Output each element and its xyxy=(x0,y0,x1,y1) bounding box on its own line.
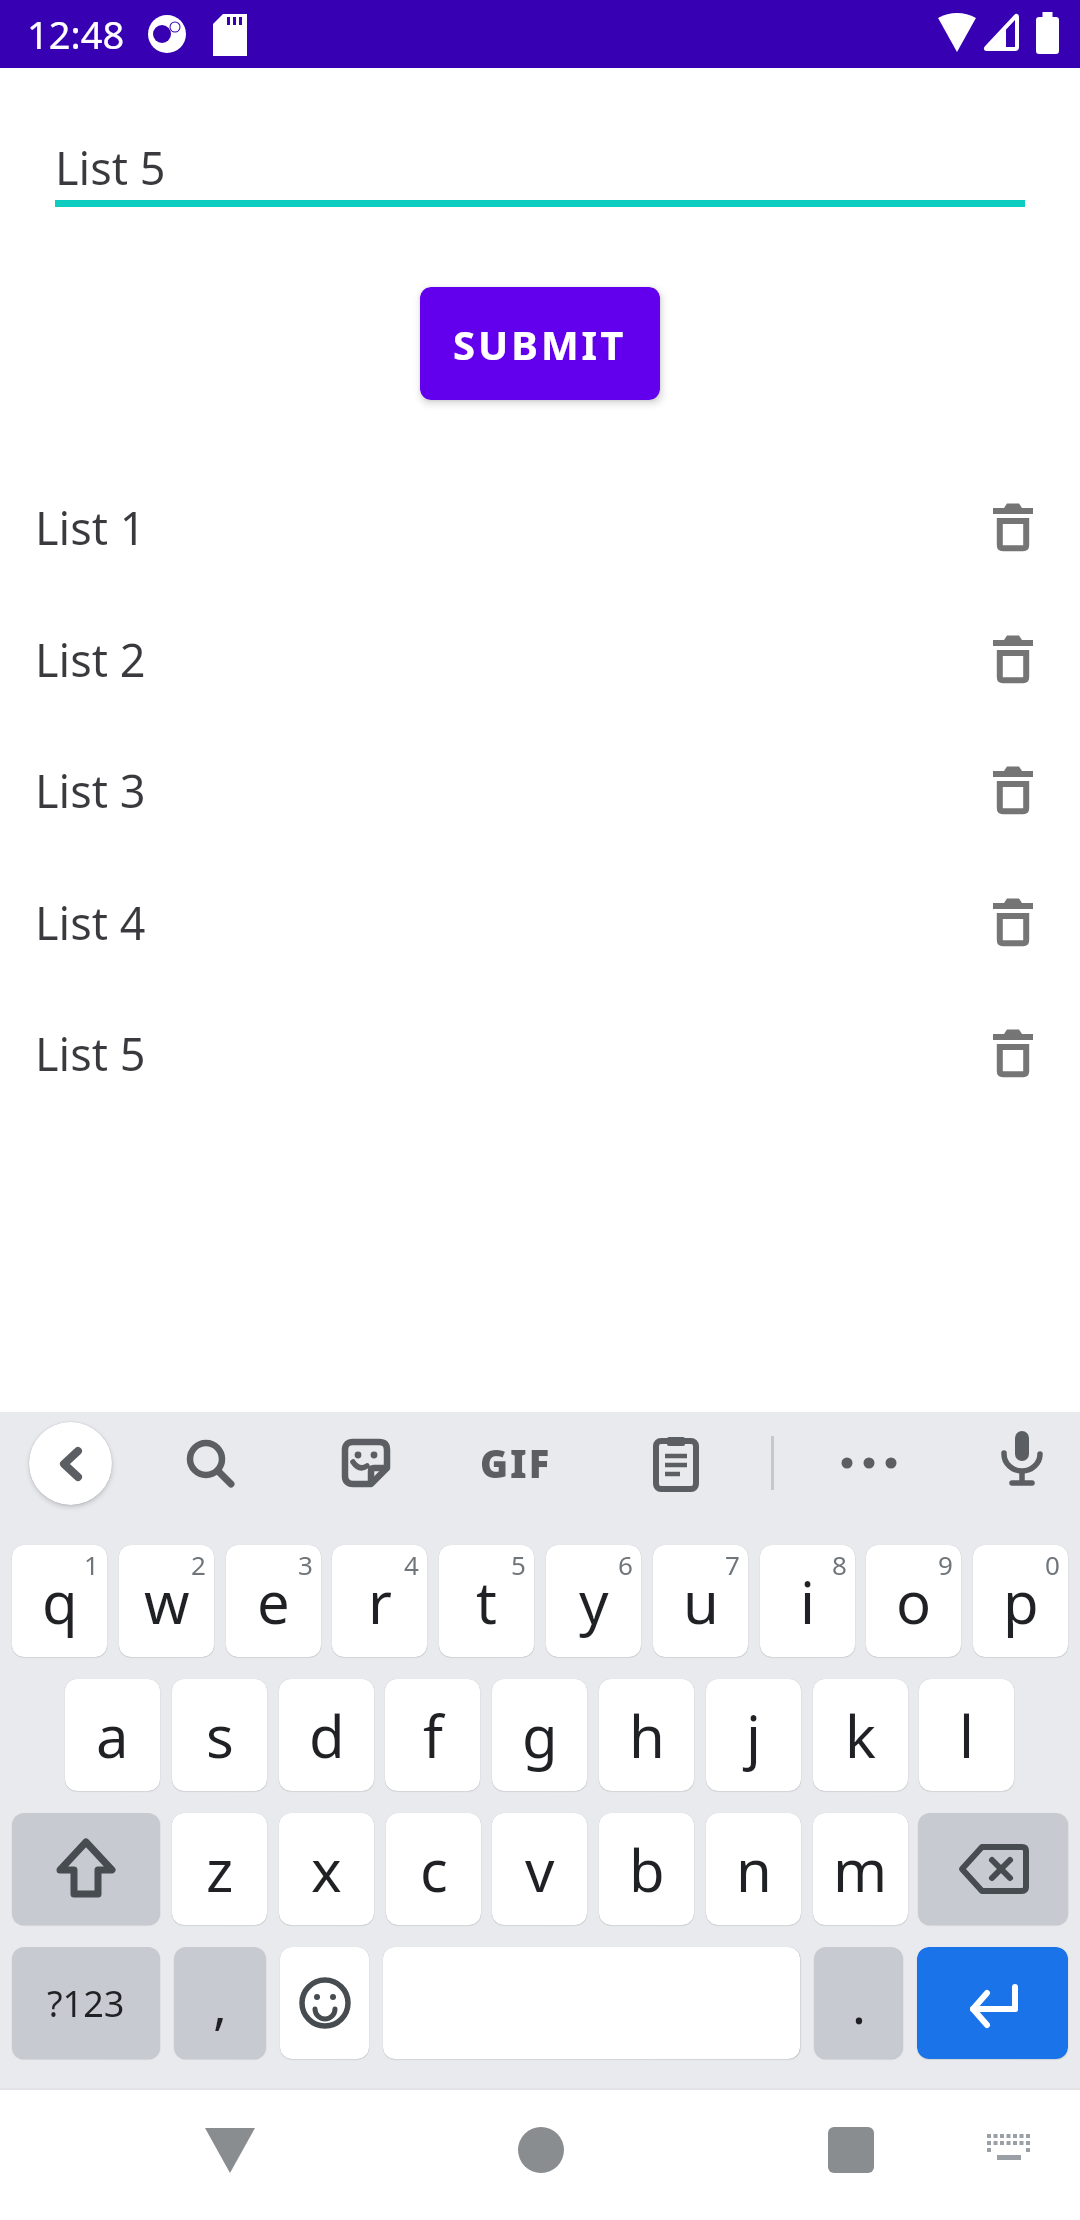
staticText: 1 xyxy=(84,1547,99,1582)
staticText: q xyxy=(42,1562,78,1641)
button[interactable]: v xyxy=(492,1813,587,1925)
staticText: 3 xyxy=(298,1547,313,1582)
staticText: ?123 xyxy=(47,1979,125,2028)
staticText: 9 xyxy=(938,1547,953,1582)
staticText: SUBMIT xyxy=(453,317,627,371)
staticText: e xyxy=(257,1562,290,1641)
button[interactable] xyxy=(334,1431,398,1495)
staticText: u xyxy=(683,1562,719,1641)
staticText: f xyxy=(423,1696,443,1775)
button[interactable]: GIF xyxy=(466,1431,566,1495)
staticText: 0 xyxy=(1045,1547,1060,1582)
staticText: j xyxy=(746,1696,761,1775)
staticText: b xyxy=(629,1830,665,1909)
button[interactable]: x xyxy=(279,1813,374,1925)
button[interactable]: a xyxy=(65,1679,160,1791)
button[interactable]: s xyxy=(172,1679,267,1791)
staticText: 6 xyxy=(618,1547,633,1582)
button[interactable] xyxy=(29,1422,112,1505)
button[interactable]: m xyxy=(813,1813,908,1925)
button[interactable]: c xyxy=(386,1813,481,1925)
button[interactable] xyxy=(837,1431,901,1495)
staticText: GIF xyxy=(480,1437,552,1489)
button[interactable]: List 3 xyxy=(0,730,1080,850)
button[interactable]: List 1 xyxy=(0,467,1080,587)
button[interactable]: o xyxy=(866,1545,961,1657)
button[interactable]: List 5 xyxy=(0,993,1080,1113)
staticText: 4 xyxy=(404,1547,419,1582)
staticText: w xyxy=(144,1562,190,1641)
staticText: c xyxy=(420,1830,448,1909)
staticText: List 2 xyxy=(35,629,146,690)
staticText: z xyxy=(206,1830,234,1909)
button[interactable]: g xyxy=(492,1679,587,1791)
button[interactable]: List 5 xyxy=(55,120,1025,215)
staticText: List 5 xyxy=(55,137,166,198)
button[interactable] xyxy=(969,2110,1049,2190)
button[interactable]: d xyxy=(279,1679,374,1791)
button[interactable]: k xyxy=(813,1679,908,1791)
staticText: o xyxy=(896,1562,932,1641)
button[interactable] xyxy=(993,896,1033,948)
button[interactable]: SUBMIT xyxy=(420,287,660,400)
button[interactable]: l xyxy=(919,1679,1014,1791)
button[interactable]: y xyxy=(546,1545,641,1657)
button[interactable]: n xyxy=(706,1813,801,1925)
staticText: 5 xyxy=(511,1547,526,1582)
button[interactable]: , xyxy=(174,1947,266,2059)
button[interactable]: e xyxy=(226,1545,321,1657)
button[interactable] xyxy=(918,1813,1068,1925)
staticText: h xyxy=(629,1696,665,1775)
staticText: t xyxy=(476,1562,497,1641)
button[interactable] xyxy=(190,2110,270,2190)
staticText: . xyxy=(852,1968,866,2039)
staticText: y xyxy=(579,1562,609,1641)
staticText: r xyxy=(368,1562,392,1641)
staticText: a xyxy=(96,1696,129,1775)
button[interactable] xyxy=(644,1431,708,1495)
button[interactable]: List 2 xyxy=(0,599,1080,719)
button[interactable]: j xyxy=(706,1679,801,1791)
staticText: v xyxy=(525,1830,555,1909)
button[interactable]: z xyxy=(172,1813,267,1925)
staticText: p xyxy=(1003,1562,1039,1641)
button[interactable]: f xyxy=(385,1679,480,1791)
button[interactable] xyxy=(811,2110,891,2190)
button[interactable]: . xyxy=(814,1947,903,2059)
button[interactable]: t xyxy=(439,1545,534,1657)
button[interactable]: w xyxy=(119,1545,214,1657)
staticText: m xyxy=(833,1830,888,1909)
staticText: List 1 xyxy=(35,497,146,558)
button[interactable] xyxy=(280,1947,369,2059)
button[interactable]: b xyxy=(599,1813,694,1925)
staticText: n xyxy=(736,1830,772,1909)
staticText: 12:48 xyxy=(27,8,125,60)
staticText: l xyxy=(959,1696,974,1775)
button[interactable]: List 4 xyxy=(0,862,1080,982)
staticText: List 4 xyxy=(35,892,146,953)
button[interactable]: q xyxy=(12,1545,107,1657)
button[interactable]: h xyxy=(599,1679,694,1791)
button[interactable] xyxy=(178,1431,242,1495)
button[interactable]: r xyxy=(332,1545,427,1657)
button[interactable] xyxy=(993,1027,1033,1079)
button[interactable] xyxy=(993,501,1033,553)
staticText: 8 xyxy=(832,1547,847,1582)
staticText: s xyxy=(206,1696,234,1775)
staticText: 2 xyxy=(191,1547,206,1582)
button[interactable] xyxy=(12,1813,160,1925)
button[interactable] xyxy=(993,633,1033,685)
button[interactable]: p xyxy=(973,1545,1068,1657)
button[interactable] xyxy=(917,1947,1068,2059)
staticText: k xyxy=(845,1696,876,1775)
staticText: d xyxy=(309,1696,345,1775)
button[interactable] xyxy=(990,1428,1054,1492)
staticText: x xyxy=(311,1830,342,1909)
button[interactable]: i xyxy=(760,1545,855,1657)
staticText: i xyxy=(800,1562,815,1641)
button[interactable] xyxy=(993,764,1033,816)
button[interactable]: u xyxy=(653,1545,748,1657)
button[interactable] xyxy=(501,2110,581,2190)
button[interactable]: ?123 xyxy=(12,1947,160,2059)
